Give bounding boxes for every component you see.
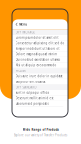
button[interactable]: Lorem ipsum dolor sit amet elit bbox=[12, 35, 68, 41]
staticText: Sunt in culpa qui officia bbox=[15, 91, 48, 94]
staticText: Explore our variety of Transfer Products bbox=[14, 133, 67, 137]
button[interactable]: Laborum sed perspiciatis bbox=[12, 101, 68, 107]
staticText: Duis aute irure dolor in cupidatat bbox=[15, 74, 62, 78]
button[interactable]: Sunt in culpa qui officia bbox=[12, 90, 68, 96]
staticText: Nisi ut aliquip ex ea commodo bbox=[15, 63, 56, 67]
staticText: Consectetur adipiscing elit sed do bbox=[15, 41, 64, 45]
staticText: Dolore magna aliqua ad minim bbox=[15, 52, 56, 56]
button[interactable]: Tempor incididunt ut labore et bbox=[12, 46, 68, 52]
staticText: Deserunt mollit anim id est bbox=[15, 96, 53, 100]
button[interactable]: Consectetur adipiscing elit sed do bbox=[12, 41, 68, 46]
button[interactable]: Duis aute irure dolor in cupidatat bbox=[12, 74, 68, 79]
staticText: Menu bbox=[19, 23, 27, 26]
button[interactable]: Dolore magna aliqua ad minim bbox=[12, 52, 68, 57]
button[interactable]: Excepteur sint occaecat bbox=[12, 79, 68, 85]
staticText: DRY PACKAGE bbox=[15, 31, 34, 34]
staticText: DRY STANDARD bbox=[15, 86, 36, 89]
button[interactable]: Deserunt mollit anim id est bbox=[12, 96, 68, 101]
button[interactable]: Nisi ut aliquip ex ea commodo bbox=[12, 63, 68, 68]
button[interactable]: Back bbox=[15, 23, 18, 26]
staticText: Excepteur sint occaecat bbox=[15, 80, 45, 83]
staticText: Laborum sed perspiciatis bbox=[15, 102, 48, 105]
button[interactable]: Quis nostrud exercitation ullamco bbox=[12, 57, 68, 63]
staticText: Wide Range of Products bbox=[22, 128, 58, 131]
staticText: Tempor incididunt ut labore et bbox=[15, 47, 59, 50]
staticText: Lorem ipsum dolor sit amet elit bbox=[15, 36, 58, 39]
staticText: FROZEN bbox=[15, 69, 25, 73]
staticText: Quis nostrud exercitation ullamco bbox=[15, 58, 60, 61]
